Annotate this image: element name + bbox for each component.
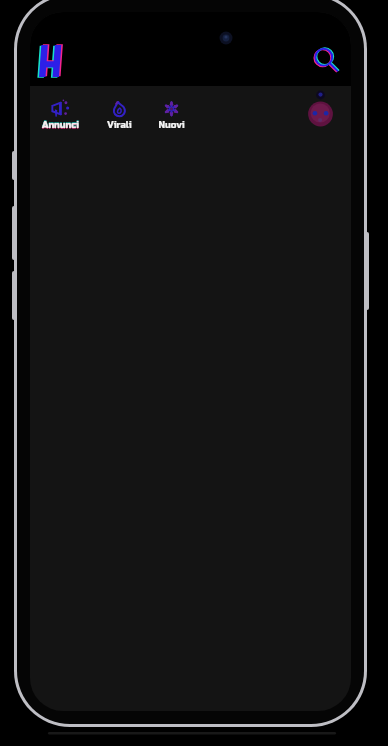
staticText: Virali [107,120,132,131]
button[interactable]: Annunci [30,100,90,131]
button[interactable]: Profile [302,87,338,123]
button[interactable]: Nuovi [141,100,201,131]
button[interactable]: Virali [89,100,149,131]
staticText: Annunci [42,121,79,132]
staticText: Nuovi [158,120,185,131]
button[interactable] [33,43,67,83]
staticText: Annunci [42,120,79,131]
staticText: Annunci [42,119,79,130]
button[interactable]: Search [311,41,345,75]
